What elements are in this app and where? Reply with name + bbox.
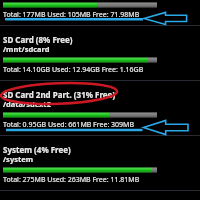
staticText: SD Card (8% Free): [3, 34, 73, 45]
staticText: SD Card 2nd Part. (31% Free): [3, 89, 116, 100]
staticText: /mnt/sdcard: [3, 44, 50, 54]
staticText: Total: 177MB Used: 105MB Free: 71.98MB: [3, 10, 140, 20]
staticText: System (4% Free): [3, 144, 71, 155]
staticText: Total: 0.95GB Used: 661MB Free: 309MB: [3, 120, 134, 130]
staticText: Total: 275MB Used: 263MB Free: 11.81MB: [3, 175, 140, 185]
staticText: /system: [3, 154, 33, 164]
button[interactable]: SD Card 2nd Part. (31% Free): [0, 81, 200, 136]
button[interactable]: Total: 177MB Used: 105MB Free: 71.98MB: [0, 0, 200, 26]
button[interactable]: System (4% Free): [0, 136, 200, 191]
button[interactable]: SD Card (8% Free): [0, 26, 200, 81]
staticText: /data/sdext2: [3, 99, 51, 109]
staticText: Total: 14.10GB Used: 12.94GB Free: 1.16G…: [3, 65, 144, 75]
